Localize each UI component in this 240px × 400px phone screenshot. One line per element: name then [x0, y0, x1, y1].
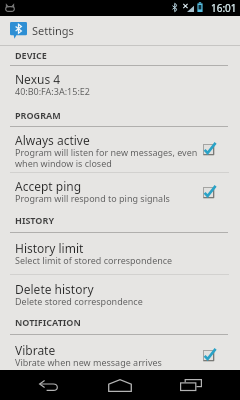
staticText: Nexus 4: [15, 71, 61, 87]
button[interactable]: Nexus 4: [0, 65, 240, 103]
staticText: Settings: [32, 23, 74, 38]
button[interactable]: Back: [24, 370, 73, 400]
staticText: DEVICE: [15, 49, 47, 61]
staticText: NOTIFICATION: [15, 316, 81, 328]
staticText: History limit: [15, 240, 84, 256]
button[interactable]: Recent apps: [167, 370, 215, 400]
button[interactable]: Vibrate: [0, 336, 240, 374]
button[interactable]: Delete history: [0, 275, 240, 313]
button[interactable]: Home: [96, 370, 144, 400]
button[interactable]: Accept ping: [0, 172, 240, 210]
staticText: Select limit of stored correspondence: [15, 254, 173, 266]
staticText: Delete history: [15, 281, 94, 297]
button[interactable]: Always active: [0, 126, 240, 170]
staticText: when window is closed: [15, 157, 112, 169]
staticText: Delete stored correspondence: [15, 295, 143, 307]
staticText: 40:B0:FA:3A:15:E2: [15, 85, 90, 97]
staticText: Vibrate: [15, 342, 56, 358]
staticText: Program will listen for new messages, ev…: [15, 146, 198, 158]
staticText: HISTORY: [15, 214, 55, 226]
staticText: 16:01: [211, 1, 237, 15]
staticText: Always active: [15, 132, 90, 148]
staticText: Program will respond to ping signals: [15, 192, 170, 204]
staticText: Accept ping: [15, 178, 82, 194]
button[interactable]: History limit: [0, 234, 240, 272]
staticText: PROGRAM: [15, 109, 61, 121]
staticText: Vibrate when new message arrives: [15, 356, 162, 368]
